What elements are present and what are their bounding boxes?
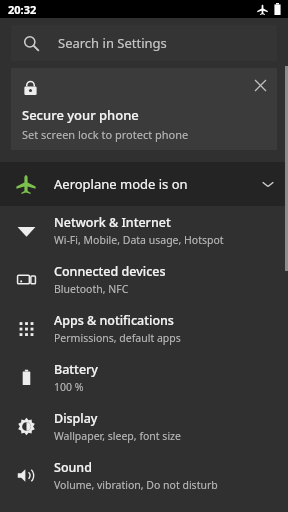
staticText: Wi-Fi, Mobile, Data usage, Hotspot bbox=[54, 233, 224, 247]
staticText: Sound bbox=[54, 459, 92, 476]
staticText: Battery bbox=[54, 361, 98, 378]
button[interactable]: Connected devices bbox=[0, 255, 288, 304]
button[interactable]: Dismiss bbox=[248, 73, 272, 97]
staticText: Bluetooth, NFC bbox=[54, 282, 129, 296]
staticText: Wallpaper, sleep, font size bbox=[54, 429, 181, 443]
button[interactable]: Secure your phone bbox=[11, 68, 277, 150]
staticText: Network & Internet bbox=[54, 214, 171, 231]
staticText: Permissions, default apps bbox=[54, 331, 181, 345]
staticText: Secure your phone bbox=[22, 106, 139, 124]
staticText: Aeroplane mode is on bbox=[54, 175, 261, 193]
staticText: 20:32 bbox=[8, 2, 37, 17]
staticText: Display bbox=[54, 410, 98, 427]
staticText: Connected devices bbox=[54, 263, 166, 280]
button[interactable]: Display bbox=[0, 402, 288, 451]
button[interactable]: Sound bbox=[0, 451, 288, 500]
staticText: Volume, vibration, Do not disturb bbox=[54, 478, 218, 492]
button[interactable]: Search in Settings bbox=[11, 25, 277, 61]
button[interactable]: Aeroplane mode is on bbox=[0, 162, 288, 206]
staticText: Apps & notifications bbox=[54, 312, 174, 329]
button[interactable]: Battery bbox=[0, 353, 288, 402]
button[interactable]: Network & Internet bbox=[0, 206, 288, 255]
staticText: Set screen lock to protect phone bbox=[22, 127, 189, 142]
staticText: 100 % bbox=[54, 380, 84, 394]
button[interactable]: Apps & notifications bbox=[0, 304, 288, 353]
staticText: Search in Settings bbox=[58, 34, 167, 52]
